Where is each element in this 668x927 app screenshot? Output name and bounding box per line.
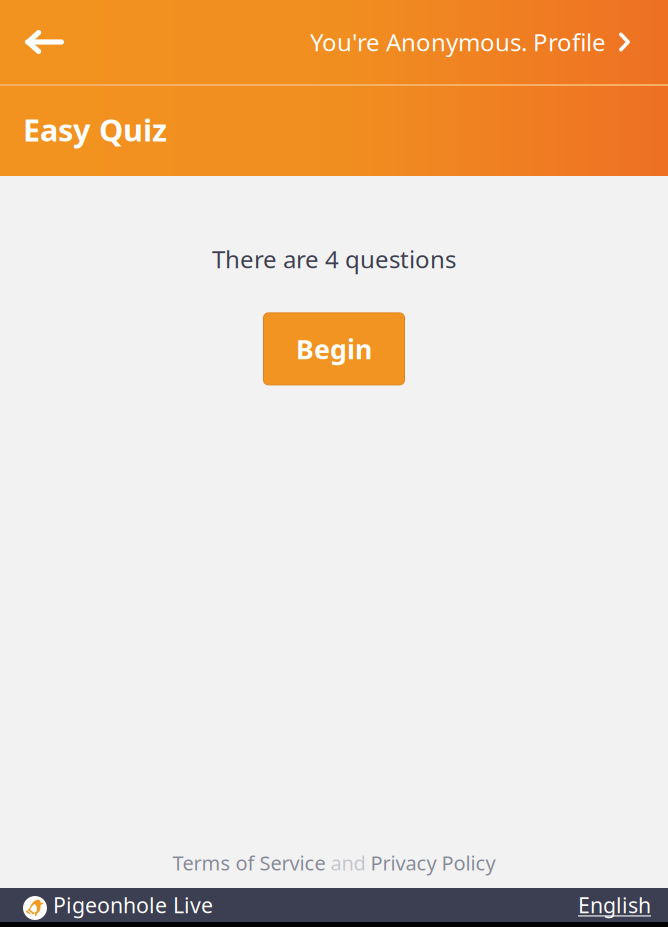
staticText: and	[330, 849, 365, 876]
staticText: You're Anonymous. Profile	[310, 26, 606, 58]
staticText: English	[578, 891, 651, 919]
button[interactable]: Begin	[263, 313, 404, 385]
button[interactable]: Terms of Service	[172, 849, 325, 876]
button[interactable]: Pigeonhole Live	[0, 888, 213, 922]
button[interactable]: Privacy Policy	[370, 849, 495, 876]
staticText: Privacy Policy	[370, 849, 495, 876]
staticText: Easy Quiz	[23, 109, 167, 150]
button[interactable]: You're Anonymous. Profile	[310, 0, 668, 84]
staticText: There are 4 questions	[212, 243, 456, 275]
staticText: Terms of Service	[172, 849, 325, 876]
staticText: Pigeonhole Live	[53, 891, 213, 919]
staticText: Begin	[296, 331, 372, 367]
button[interactable]: Back	[0, 0, 89, 84]
button[interactable]: English	[578, 888, 668, 922]
